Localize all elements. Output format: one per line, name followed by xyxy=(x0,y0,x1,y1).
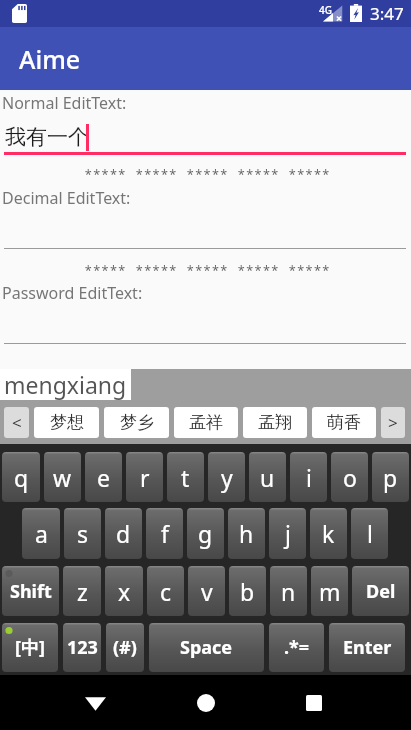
button[interactable]: u xyxy=(249,452,286,502)
button[interactable]: y xyxy=(208,452,245,502)
staticText: ***** xyxy=(84,261,126,280)
staticText: 梦想 xyxy=(50,412,84,433)
button[interactable]: 孟翔 xyxy=(243,407,307,438)
button[interactable]: r xyxy=(126,452,163,502)
button[interactable]: 萌香 xyxy=(312,407,376,438)
staticText: ***** xyxy=(186,165,228,184)
staticText: 我有一个 xyxy=(5,124,89,150)
button[interactable]: p xyxy=(372,452,409,502)
staticText: 梦乡 xyxy=(120,412,154,433)
staticText: Password EditText: xyxy=(2,282,143,304)
button[interactable]: Back xyxy=(70,678,120,728)
staticText: c xyxy=(160,576,172,607)
staticText: Space xyxy=(180,635,233,660)
staticText: ***** xyxy=(84,165,126,184)
staticText: t xyxy=(181,462,190,493)
staticText: mengxiang xyxy=(4,369,127,400)
staticText: ***** xyxy=(186,261,228,280)
button[interactable]: d xyxy=(105,508,142,559)
staticText: q xyxy=(14,462,29,493)
staticText: 孟祥 xyxy=(189,412,223,433)
button[interactable]: a xyxy=(22,508,60,559)
staticText: 孟翔 xyxy=(258,412,292,433)
staticText: x xyxy=(118,576,131,607)
button[interactable]: m xyxy=(311,566,348,616)
staticText: 萌香 xyxy=(327,412,361,433)
button[interactable]: n xyxy=(270,566,307,616)
button[interactable]: k xyxy=(310,508,347,559)
staticText: 4G xyxy=(319,3,332,17)
staticText: 3:47 xyxy=(370,2,404,25)
button[interactable]: Del xyxy=(352,566,409,616)
staticText: l xyxy=(367,518,373,549)
button[interactable]: Recents xyxy=(289,678,339,728)
staticText: < xyxy=(12,411,22,434)
button[interactable]: e xyxy=(85,452,122,502)
staticText: g xyxy=(198,518,213,549)
staticText: ***** xyxy=(135,261,177,280)
button[interactable]: .*= xyxy=(269,623,324,672)
button[interactable]: 孟祥 xyxy=(174,407,238,438)
staticText: w xyxy=(53,462,72,493)
staticText: 123 xyxy=(67,635,98,660)
button[interactable]: i xyxy=(290,452,327,502)
staticText: b xyxy=(240,576,255,607)
staticText: Aime xyxy=(19,42,81,76)
staticText: ***** xyxy=(237,261,279,280)
button[interactable]: h xyxy=(228,508,265,559)
button[interactable]: 梦乡 xyxy=(104,407,169,438)
button[interactable]: 梦想 xyxy=(34,407,99,438)
button[interactable]: (#) xyxy=(106,623,144,672)
button[interactable]: Shift xyxy=(2,566,59,616)
staticText: Shift xyxy=(10,579,52,604)
staticText: m xyxy=(319,576,341,607)
button[interactable]: Enter xyxy=(329,623,405,672)
button[interactable]: t xyxy=(167,452,204,502)
staticText: r xyxy=(140,462,150,493)
button[interactable]: > xyxy=(381,407,405,438)
staticText: ***** xyxy=(288,261,330,280)
staticText: v xyxy=(201,576,213,607)
staticText: p xyxy=(383,462,398,493)
staticText: Del xyxy=(366,579,396,604)
staticText: o xyxy=(343,462,357,493)
staticText: i xyxy=(306,462,312,493)
button[interactable]: c xyxy=(147,566,184,616)
staticText: n xyxy=(281,576,296,607)
button[interactable]: v xyxy=(188,566,225,616)
staticText: ***** xyxy=(135,165,177,184)
staticText: .*= xyxy=(284,635,310,660)
staticText: ***** xyxy=(288,165,330,184)
button[interactable]: x xyxy=(105,566,143,616)
button[interactable]: q xyxy=(2,452,40,502)
staticText: f xyxy=(161,518,169,549)
staticText: Enter xyxy=(343,635,392,660)
button[interactable]: w xyxy=(44,452,81,502)
staticText: j xyxy=(285,518,291,549)
staticText: h xyxy=(239,518,254,549)
button[interactable]: [中] xyxy=(2,623,58,672)
button[interactable]: j xyxy=(269,508,306,559)
staticText: a xyxy=(35,518,48,549)
button[interactable]: 123 xyxy=(63,623,101,672)
button[interactable]: b xyxy=(229,566,266,616)
staticText: (#) xyxy=(113,635,137,660)
button[interactable]: < xyxy=(4,407,29,438)
button[interactable]: s xyxy=(64,508,101,559)
staticText: z xyxy=(77,576,88,607)
staticText: u xyxy=(260,462,275,493)
button[interactable]: o xyxy=(331,452,368,502)
button[interactable]: l xyxy=(351,508,388,559)
staticText: [中] xyxy=(15,635,45,660)
staticText: k xyxy=(322,518,335,549)
button[interactable]: f xyxy=(146,508,183,559)
button[interactable]: g xyxy=(187,508,224,559)
button[interactable]: Space xyxy=(149,623,264,672)
staticText: e xyxy=(97,462,110,493)
button[interactable]: Home xyxy=(181,678,231,728)
staticText: ***** xyxy=(237,165,279,184)
staticText: s xyxy=(77,518,89,549)
button[interactable]: z xyxy=(63,566,101,616)
staticText: d xyxy=(116,518,131,549)
staticText: Decimal EditText: xyxy=(2,187,131,209)
